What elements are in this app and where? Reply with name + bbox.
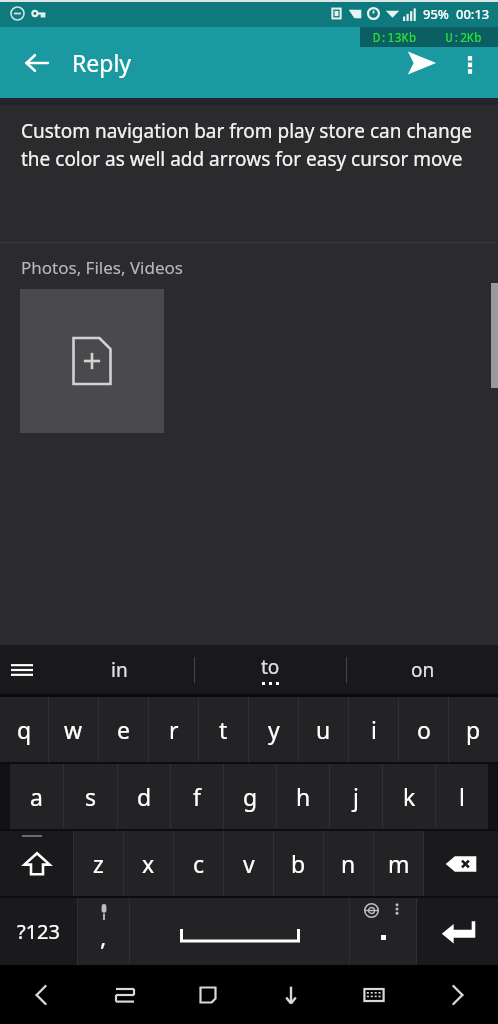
staticText: j bbox=[353, 781, 359, 812]
staticText: Photos, Files, Videos bbox=[21, 256, 183, 279]
button[interactable]: Backspace bbox=[424, 831, 498, 896]
button[interactable]: j bbox=[330, 764, 382, 829]
staticText: d bbox=[137, 781, 152, 812]
staticText: k bbox=[403, 781, 416, 812]
button[interactable]: Keyboard bbox=[332, 965, 415, 1024]
staticText: U:2Kb bbox=[429, 29, 498, 45]
staticText: w bbox=[64, 714, 83, 745]
button[interactable]: e bbox=[99, 697, 148, 762]
button[interactable]: k bbox=[383, 764, 435, 829]
button[interactable]: a bbox=[10, 764, 63, 829]
staticText: a bbox=[30, 781, 43, 812]
staticText: to bbox=[261, 654, 280, 680]
button[interactable]: Home bbox=[166, 965, 249, 1024]
button[interactable]: Next bbox=[415, 965, 498, 1024]
staticText: s bbox=[85, 781, 97, 812]
button[interactable]: n bbox=[324, 831, 373, 896]
button[interactable]: y bbox=[249, 697, 298, 762]
staticText: c bbox=[193, 848, 205, 879]
button[interactable]: Add attachment bbox=[20, 289, 164, 433]
button[interactable]: on bbox=[347, 645, 498, 694]
staticText: in bbox=[111, 657, 128, 683]
staticText: x bbox=[142, 848, 155, 879]
button[interactable]: r bbox=[149, 697, 198, 762]
staticText: u bbox=[316, 714, 331, 745]
button[interactable]: ?123 bbox=[0, 898, 77, 965]
button[interactable]: h bbox=[277, 764, 329, 829]
staticText: p bbox=[466, 714, 481, 745]
staticText: on bbox=[411, 657, 435, 683]
staticText: m bbox=[388, 848, 410, 879]
button[interactable]: f bbox=[171, 764, 223, 829]
button[interactable]: Enter bbox=[417, 898, 498, 965]
button[interactable]: Space bbox=[130, 898, 349, 965]
button[interactable]: Recents bbox=[83, 965, 166, 1024]
staticText: b bbox=[291, 848, 306, 879]
staticText: t bbox=[219, 714, 228, 745]
button[interactable]: Hide keyboard bbox=[249, 965, 332, 1024]
button[interactable]: d bbox=[118, 764, 170, 829]
staticText: l bbox=[459, 781, 465, 812]
staticText: z bbox=[93, 848, 104, 879]
button[interactable]: q bbox=[0, 697, 48, 762]
staticText: y bbox=[268, 714, 280, 745]
button[interactable]: z bbox=[74, 831, 123, 896]
button[interactable]: Shift bbox=[0, 831, 73, 896]
button[interactable]: in bbox=[44, 645, 194, 694]
button[interactable]: l bbox=[436, 764, 488, 829]
button[interactable] bbox=[350, 898, 416, 965]
button[interactable]: to bbox=[195, 645, 346, 694]
button[interactable]: o bbox=[399, 697, 448, 762]
staticText: v bbox=[243, 848, 255, 879]
staticText: D:13Kb bbox=[360, 29, 429, 45]
staticText: g bbox=[243, 781, 258, 812]
button[interactable]: Previous bbox=[0, 965, 83, 1024]
staticText: Custom navigation bar from play store ca… bbox=[21, 118, 474, 172]
staticText: , bbox=[100, 920, 107, 953]
button[interactable]: b bbox=[274, 831, 323, 896]
staticText: 95% bbox=[423, 5, 449, 23]
button[interactable]: Keyboard menu bbox=[0, 645, 44, 694]
button[interactable]: s bbox=[64, 764, 117, 829]
button[interactable]: x bbox=[124, 831, 173, 896]
staticText: h bbox=[296, 781, 311, 812]
staticText: r bbox=[169, 714, 179, 745]
staticText: Reply bbox=[72, 47, 132, 78]
staticText: f bbox=[193, 781, 201, 812]
button[interactable]: p bbox=[449, 697, 498, 762]
button[interactable]: Back bbox=[14, 40, 60, 86]
staticText: o bbox=[417, 714, 431, 745]
button[interactable]: t bbox=[199, 697, 248, 762]
button[interactable]: i bbox=[349, 697, 398, 762]
button[interactable]: v bbox=[224, 831, 273, 896]
staticText: ?123 bbox=[17, 918, 60, 945]
staticText: 00:13 bbox=[456, 5, 490, 23]
staticText: n bbox=[341, 848, 356, 879]
button[interactable]: More options bbox=[448, 37, 492, 89]
button[interactable]: u bbox=[299, 697, 348, 762]
staticText: i bbox=[371, 714, 377, 745]
staticText: e bbox=[117, 714, 130, 745]
button[interactable]: Send bbox=[396, 37, 448, 89]
button[interactable]: , bbox=[78, 898, 129, 965]
staticText: q bbox=[17, 714, 32, 745]
button[interactable]: c bbox=[174, 831, 223, 896]
button[interactable]: m bbox=[374, 831, 423, 896]
button[interactable]: w bbox=[49, 697, 98, 762]
button[interactable]: g bbox=[224, 764, 276, 829]
